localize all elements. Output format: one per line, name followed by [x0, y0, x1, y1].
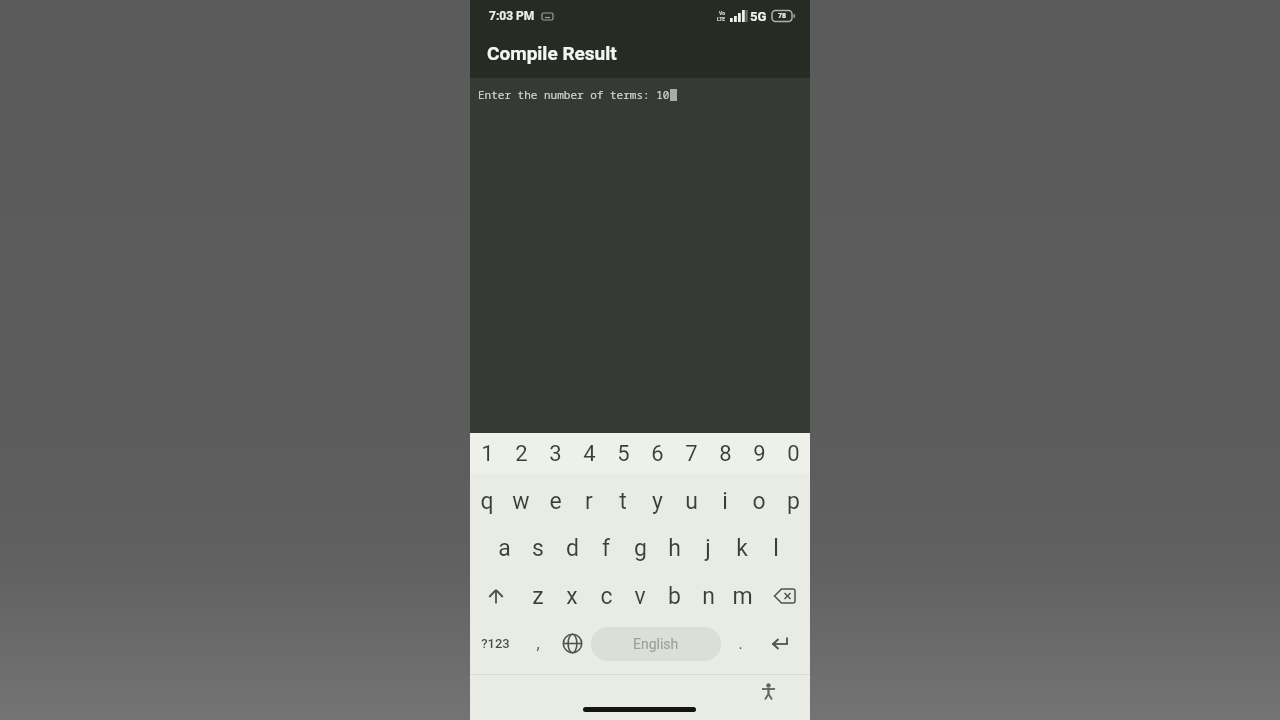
staticText: h	[668, 535, 681, 562]
staticText: v	[634, 583, 646, 610]
staticText: 0	[787, 441, 800, 467]
staticText: 1	[481, 441, 494, 467]
button[interactable]: b	[657, 572, 691, 620]
staticText: y	[652, 488, 663, 515]
staticText: k	[736, 535, 748, 562]
button[interactable]: e	[538, 477, 572, 525]
staticText: 5G	[750, 9, 767, 24]
button[interactable]: z	[521, 572, 555, 620]
staticText: LTE	[717, 16, 726, 22]
staticText: 4	[583, 441, 596, 467]
button[interactable]: .	[723, 620, 757, 667]
staticText: 8	[719, 441, 732, 467]
button[interactable]: q	[470, 477, 504, 525]
staticText: m	[732, 583, 753, 610]
button[interactable]: w	[504, 477, 538, 525]
staticText: 3	[549, 441, 562, 467]
button[interactable]: 0	[776, 433, 810, 474]
button[interactable]: 7	[674, 433, 708, 474]
button[interactable]	[555, 620, 589, 667]
staticText: 7:03 PM	[489, 9, 535, 23]
staticText: u	[685, 488, 698, 515]
staticText: ,	[536, 634, 540, 653]
staticText: f	[602, 535, 610, 562]
button[interactable]: ?123	[470, 620, 521, 667]
button[interactable]: 4	[572, 433, 606, 474]
button[interactable]: s	[521, 525, 555, 572]
staticText: 9	[753, 441, 766, 467]
staticText: z	[532, 583, 544, 610]
staticText: n	[702, 583, 715, 610]
staticText: Vo	[719, 10, 725, 16]
staticText: p	[787, 488, 800, 515]
staticText: q	[480, 488, 494, 515]
button[interactable]: v	[623, 572, 657, 620]
button[interactable]: l	[759, 525, 793, 572]
button[interactable]: 1	[470, 433, 504, 474]
staticText: c	[600, 583, 613, 610]
button[interactable]	[761, 683, 776, 700]
staticText: d	[566, 535, 579, 562]
staticText: Compile Result	[487, 42, 617, 64]
staticText: o	[752, 488, 766, 515]
button[interactable]: f	[589, 525, 623, 572]
staticText: w	[512, 488, 530, 515]
button[interactable]: a	[487, 525, 521, 572]
button[interactable]: 3	[538, 433, 572, 474]
button[interactable]	[583, 707, 696, 712]
button[interactable]: 9	[742, 433, 776, 474]
staticText: r	[585, 488, 593, 515]
button[interactable]: 6	[640, 433, 674, 474]
button[interactable]: y	[640, 477, 674, 525]
button[interactable]: t	[606, 477, 640, 525]
button[interactable]: d	[555, 525, 589, 572]
staticText: .	[738, 634, 743, 653]
staticText: i	[722, 488, 728, 515]
button[interactable]: c	[589, 572, 623, 620]
button[interactable]: g	[623, 525, 657, 572]
button[interactable]	[757, 620, 803, 667]
button[interactable]: k	[725, 525, 759, 572]
staticText: j	[705, 535, 711, 562]
staticText: 2	[515, 441, 528, 467]
staticText: 5	[617, 441, 630, 467]
staticText: b	[668, 583, 681, 610]
button[interactable]	[759, 572, 810, 620]
staticText: Enter the number of terms: 10	[478, 87, 670, 102]
button[interactable]: 5	[606, 433, 640, 474]
staticText: 7	[685, 441, 698, 467]
button[interactable]: m	[725, 572, 759, 620]
staticText: 78	[778, 12, 787, 20]
button[interactable]: English	[589, 620, 723, 667]
button[interactable]	[470, 572, 521, 620]
button[interactable]: o	[742, 477, 776, 525]
button[interactable]: 2	[504, 433, 538, 474]
staticText: e	[549, 488, 562, 515]
button[interactable]: x	[555, 572, 589, 620]
staticText: 6	[651, 441, 664, 467]
button[interactable]: h	[657, 525, 691, 572]
staticText: ?123	[481, 636, 510, 651]
staticText: English	[633, 636, 679, 652]
staticText: a	[498, 535, 511, 562]
button[interactable]: j	[691, 525, 725, 572]
button[interactable]: ,	[521, 620, 555, 667]
button[interactable]: i	[708, 477, 742, 525]
button[interactable]: 8	[708, 433, 742, 474]
staticText: x	[566, 583, 578, 610]
button[interactable]: r	[572, 477, 606, 525]
staticText: t	[619, 488, 627, 515]
button[interactable]: n	[691, 572, 725, 620]
staticText: s	[532, 535, 544, 562]
button[interactable]: u	[674, 477, 708, 525]
staticText: g	[634, 535, 647, 562]
button[interactable]: p	[776, 477, 810, 525]
staticText: l	[773, 535, 779, 562]
